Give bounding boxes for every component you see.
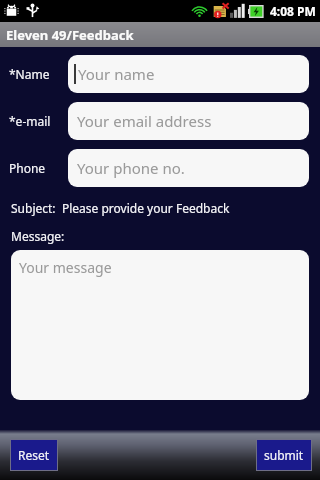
staticText: Your phone no. (77, 158, 185, 178)
staticText: Message: (11, 228, 65, 244)
staticText: Your message (19, 258, 112, 277)
staticText: submit (264, 447, 304, 463)
staticText: Please provide your Feedback (62, 200, 230, 216)
staticText: *e-mail (9, 113, 51, 129)
button[interactable]: Reset (10, 439, 58, 471)
staticText: Subject: (11, 200, 56, 216)
staticText: 4:08 PM (270, 3, 316, 19)
button[interactable]: submit (256, 439, 312, 471)
staticText: Phone (9, 160, 46, 176)
staticText: *Name (9, 66, 50, 82)
button[interactable]: Your phone no. (68, 149, 309, 187)
button[interactable]: Your name (68, 55, 309, 93)
staticText: Your email address (77, 111, 212, 131)
staticText: Reset (18, 447, 50, 463)
button[interactable]: Your email address (68, 102, 309, 140)
staticText: Eleven 49/Feedback (6, 26, 134, 44)
button[interactable]: Your message (11, 250, 309, 400)
staticText: Your name (78, 64, 155, 84)
